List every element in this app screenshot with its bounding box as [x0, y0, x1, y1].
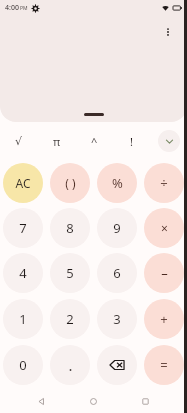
button[interactable]: ×	[144, 208, 184, 248]
button[interactable]: Backspace	[97, 345, 137, 385]
button[interactable]: ÷	[144, 163, 184, 203]
staticText: π	[53, 134, 61, 149]
staticText: ^	[91, 134, 98, 149]
button[interactable]: 6	[97, 253, 137, 293]
staticText: ×	[161, 220, 168, 236]
staticText: %	[112, 174, 123, 192]
button[interactable]: AC	[3, 163, 43, 203]
button[interactable]: More functions	[158, 130, 180, 152]
staticText: .	[68, 355, 73, 375]
button[interactable]: Expand display	[84, 113, 104, 116]
button[interactable]: More options	[158, 22, 178, 42]
button[interactable]: 1	[3, 299, 43, 339]
staticText: 0	[19, 356, 27, 374]
staticText: √	[15, 135, 23, 148]
staticText: =	[160, 356, 168, 374]
button[interactable]: 4	[3, 253, 43, 293]
staticText: 1	[19, 310, 27, 328]
button[interactable]: =	[144, 345, 184, 385]
button[interactable]: 2	[50, 299, 90, 339]
button[interactable]: ( )	[50, 163, 90, 203]
staticText: ÷	[160, 174, 168, 192]
button[interactable]: π	[38, 122, 76, 160]
staticText: 6	[113, 264, 121, 282]
staticText: PM	[20, 5, 28, 12]
staticText: 3	[113, 310, 121, 328]
button[interactable]: !	[113, 122, 150, 160]
button[interactable]: –	[144, 253, 184, 293]
button[interactable]: Home	[83, 391, 103, 411]
staticText: ( )	[65, 175, 76, 191]
staticText: 7	[19, 219, 27, 237]
staticText: 4	[19, 264, 27, 282]
staticText: 2	[66, 310, 74, 328]
button[interactable]: %	[97, 163, 137, 203]
staticText: 5	[66, 264, 74, 282]
button[interactable]: +	[144, 299, 184, 339]
button[interactable]: √	[0, 122, 38, 160]
staticText: –	[161, 264, 168, 282]
staticText: !	[130, 134, 133, 149]
button[interactable]: 0	[3, 345, 43, 385]
staticText: 9	[113, 219, 121, 237]
button[interactable]: ^	[76, 122, 113, 160]
button[interactable]: 5	[50, 253, 90, 293]
button[interactable]: 9	[97, 208, 137, 248]
staticText: 4:00	[5, 3, 19, 13]
staticText: AC	[15, 175, 31, 191]
button[interactable]: 8	[50, 208, 90, 248]
button[interactable]: Recents	[135, 391, 155, 411]
button[interactable]: 3	[97, 299, 137, 339]
button[interactable]: .	[50, 345, 90, 385]
staticText: 8	[66, 219, 74, 237]
button[interactable]: Back	[31, 391, 51, 411]
button[interactable]: 7	[3, 208, 43, 248]
staticText: +	[160, 310, 168, 328]
